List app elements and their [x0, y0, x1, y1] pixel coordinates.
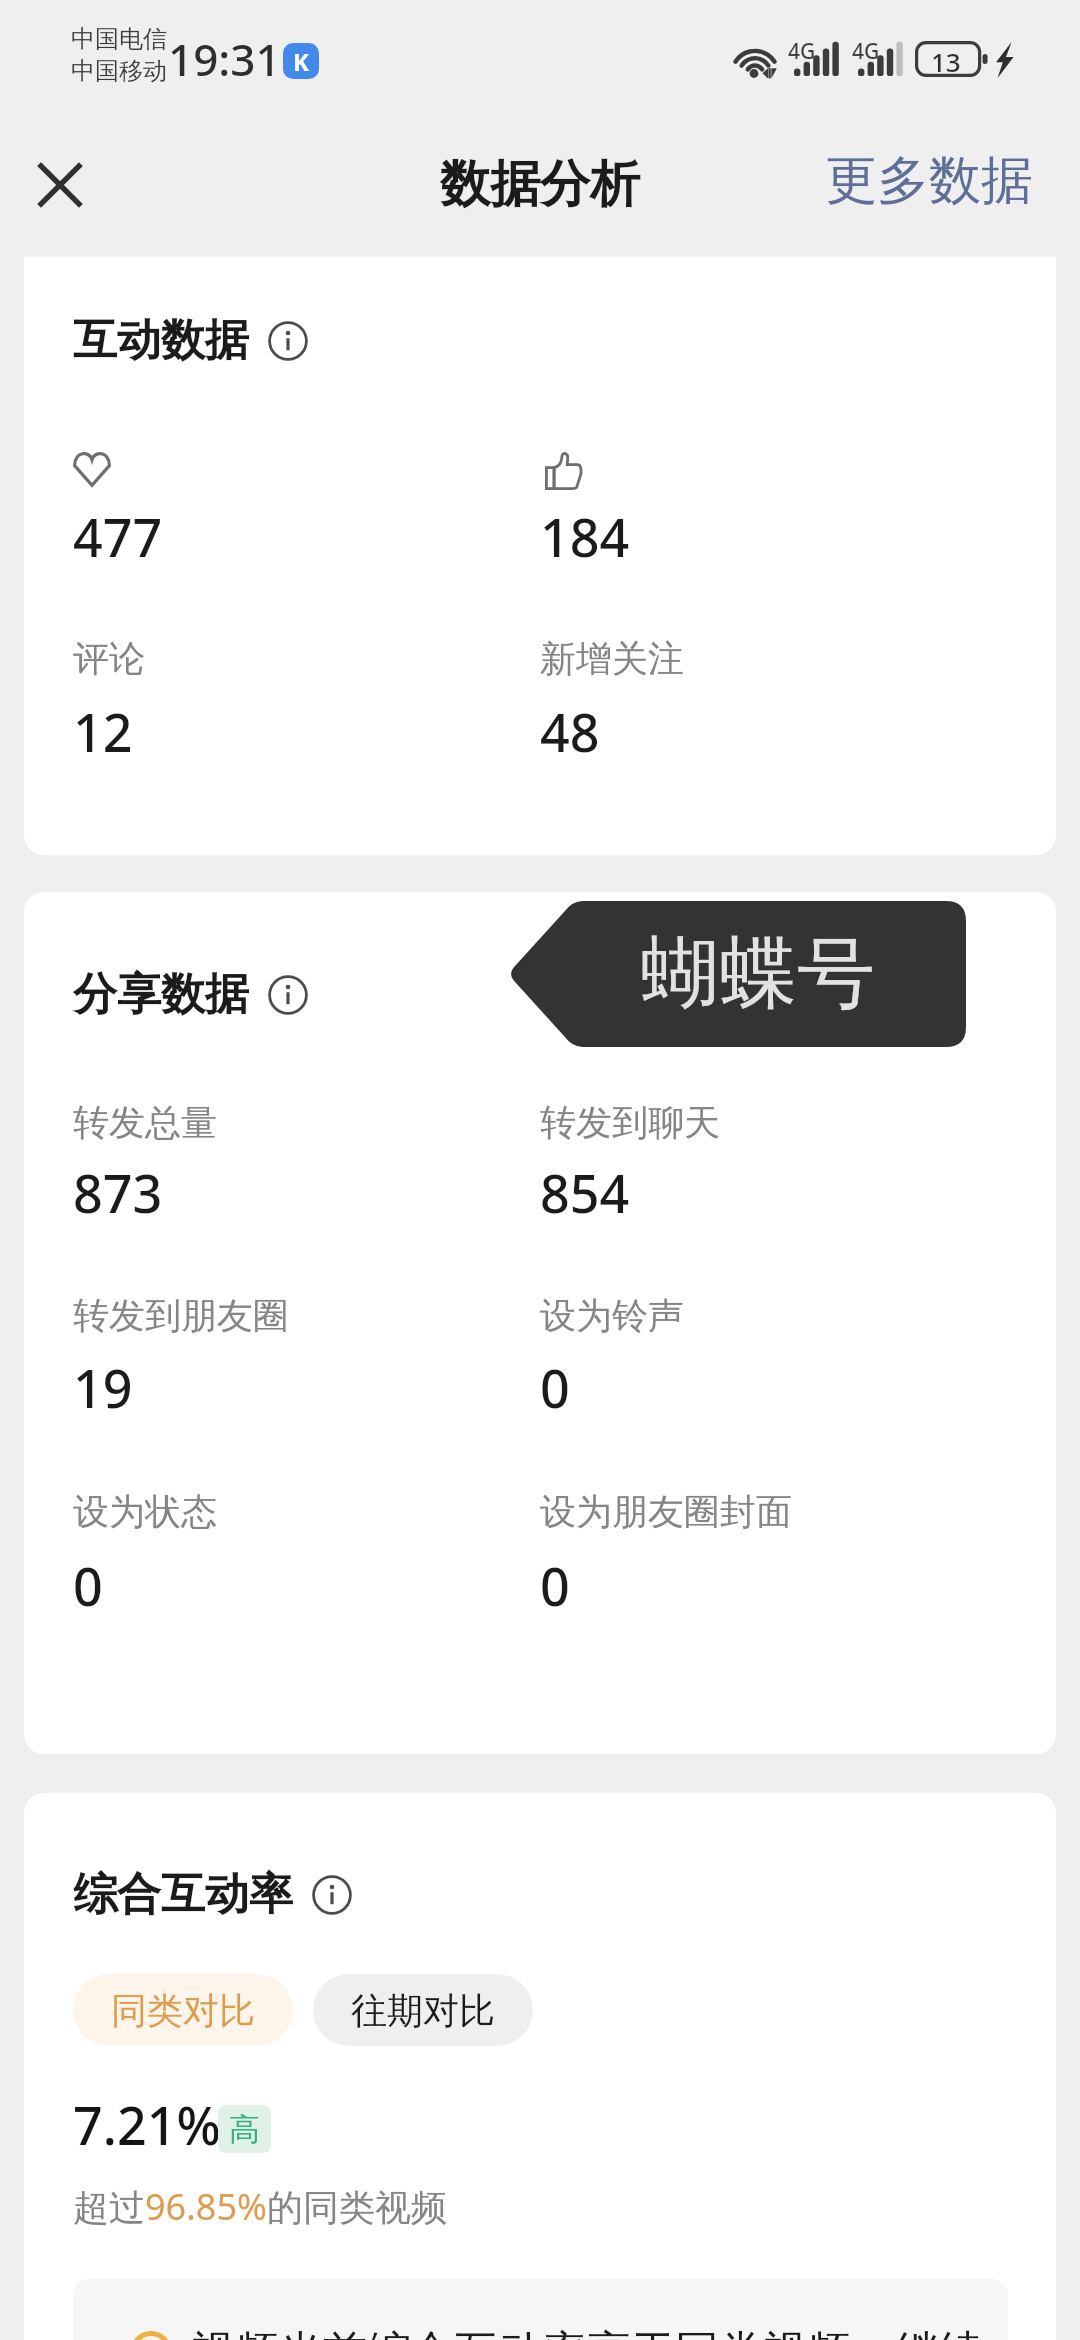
staticText: 184: [540, 501, 630, 572]
button[interactable]: 同类对比: [73, 1974, 293, 2046]
staticText: 854: [540, 1157, 630, 1228]
staticText: 设为朋友圈封面: [540, 1489, 792, 1534]
staticText: 评论: [73, 636, 145, 681]
staticText: 873: [73, 1157, 163, 1228]
staticText: 超过96.85%的同类视频: [73, 2182, 447, 2231]
button[interactable]: 往期对比: [313, 1974, 533, 2046]
button[interactable]: Close: [20, 145, 100, 225]
staticText: 同类对比: [111, 1988, 255, 2033]
staticText: 设为铃声: [540, 1293, 684, 1338]
button[interactable]: 更多数据: [807, 138, 1051, 224]
staticText: 中国电信: [71, 24, 167, 54]
staticText: 0: [540, 1550, 570, 1621]
button[interactable]: Info: [265, 972, 311, 1018]
staticText: 48: [540, 696, 600, 767]
staticText: 13: [931, 44, 961, 79]
staticText: 4G: [788, 37, 816, 66]
staticText: 0: [540, 1352, 570, 1423]
staticText: 蝴蝶号: [641, 925, 875, 1023]
staticText: 12: [73, 696, 133, 767]
staticText: 往期对比: [351, 1988, 495, 2033]
staticText: 4G: [852, 37, 880, 66]
staticText: 19: [73, 1352, 133, 1423]
staticText: 477: [73, 501, 163, 572]
staticText: 分享数据: [73, 967, 249, 1022]
staticText: 高: [229, 2110, 260, 2149]
staticText: 0: [73, 1550, 103, 1621]
staticText: 新增关注: [540, 636, 684, 681]
button[interactable]: Info: [265, 318, 311, 364]
staticText: 综合互动率: [73, 1867, 293, 1922]
staticText: 互动数据: [73, 313, 249, 368]
staticText: 设为状态: [73, 1489, 217, 1534]
staticText: K: [293, 45, 309, 78]
staticText: 19:31: [168, 29, 281, 89]
staticText: 转发到聊天: [540, 1100, 720, 1145]
staticText: 更多数据: [825, 148, 1033, 214]
staticText: 数据分析: [440, 153, 640, 216]
staticText: 转发到朋友圈: [73, 1293, 289, 1338]
button[interactable]: Info: [309, 1872, 355, 1918]
staticText: 7.21%: [73, 2089, 221, 2160]
staticText: 中国移动: [71, 56, 167, 86]
staticText: 转发总量: [73, 1100, 217, 1145]
staticText: 视频当前综合互动率高于同类视频，继续: [191, 2325, 983, 2340]
